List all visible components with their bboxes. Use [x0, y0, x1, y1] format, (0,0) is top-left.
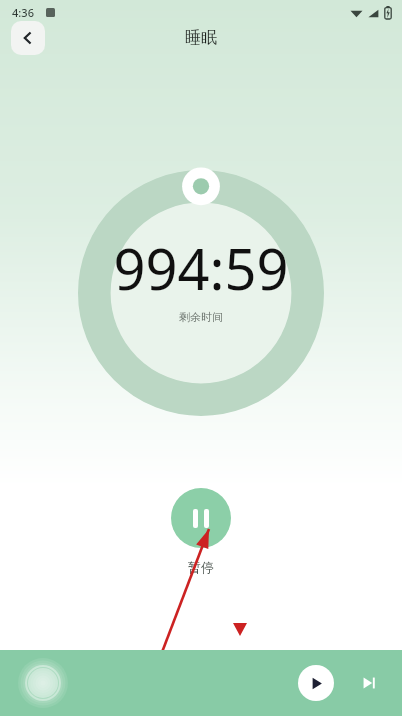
staticText: 暂停	[188, 559, 214, 575]
staticText: 睡眠	[185, 28, 217, 48]
staticText: 994:59	[113, 230, 289, 306]
button[interactable]: 下一首	[354, 668, 384, 698]
button[interactable]: 播放	[298, 665, 334, 701]
button[interactable]: 返回	[11, 21, 45, 55]
button[interactable]: 暂停	[171, 488, 231, 548]
staticText: 4:36	[12, 5, 34, 20]
staticText: 剩余时间	[179, 310, 223, 324]
